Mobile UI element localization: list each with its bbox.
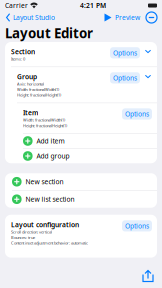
staticText: Height: fractionalHeight(1) (17, 92, 61, 98)
staticText: Preview (115, 13, 140, 22)
staticText: Add group (37, 152, 70, 160)
staticText: Axis: horizontal (17, 81, 44, 87)
staticText: Height: fractionalHeight(1) (23, 123, 67, 128)
button[interactable]: Layout Studio (5, 12, 55, 22)
staticText: Options (113, 48, 137, 57)
button[interactable]: Add item (5, 134, 157, 148)
staticText: Layout configuration (11, 220, 79, 229)
button[interactable]: Share (142, 269, 154, 282)
staticText: Options (125, 221, 149, 230)
button[interactable]: Options (110, 47, 140, 58)
staticText: Options (113, 73, 137, 82)
staticText: Add item (37, 137, 65, 145)
button[interactable]: New list section (5, 191, 157, 208)
button[interactable]: Remove (140, 12, 157, 23)
staticText: Width: fractionalWidth(1) (17, 87, 59, 92)
staticText: Content inset adjustment behavior: autom… (11, 240, 88, 246)
button[interactable]: Options (122, 108, 152, 120)
button[interactable]: New section (5, 173, 157, 190)
button[interactable]: Add group (5, 149, 157, 163)
staticText: Scroll direction: vertical (11, 229, 52, 235)
staticText: Bounces: true (11, 235, 35, 240)
staticText: Options (125, 110, 149, 118)
staticText: New list section (26, 195, 75, 204)
button[interactable]: Options (122, 220, 152, 231)
staticText: Width: fractionalWidth(1) (23, 117, 65, 123)
button[interactable]: Options (110, 72, 140, 84)
staticText: Layout Studio (13, 13, 55, 22)
staticText: Carrier (5, 1, 28, 10)
staticText: 4:21 PM (80, 1, 106, 10)
staticText: Items: 0 (11, 56, 25, 62)
staticText: Section (11, 47, 35, 56)
staticText: Group (17, 72, 37, 81)
staticText: New section (26, 177, 64, 186)
button[interactable]: Preview (104, 13, 140, 22)
staticText: Layout Editor (5, 24, 93, 42)
staticText: Item (23, 108, 38, 117)
